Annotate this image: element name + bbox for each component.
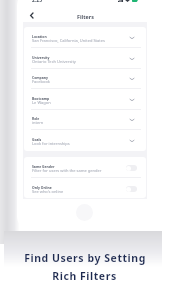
staticText: Filters — [77, 13, 94, 20]
staticText: Company — [32, 75, 48, 80]
button[interactable]: Back — [25, 9, 38, 22]
button[interactable]: University — [24, 48, 146, 69]
button[interactable]: Role — [24, 109, 146, 130]
staticText: See who's online — [32, 189, 64, 194]
staticText: Find Users by Setting — [24, 251, 146, 265]
staticText: Same Gender — [32, 164, 55, 169]
staticText: Bootcamp — [32, 96, 50, 101]
button[interactable]: Only Online — [24, 178, 146, 198]
button[interactable]: Same Gender — [24, 157, 146, 178]
staticText: 2:25 — [32, 0, 42, 4]
button[interactable]: Bootcamp — [24, 89, 146, 110]
staticText: Facebook — [32, 79, 50, 84]
staticText: Only Online — [32, 185, 52, 190]
button[interactable]: Company — [24, 68, 146, 89]
staticText: Filter for users with the same gender — [32, 168, 102, 173]
staticText: Location — [32, 34, 47, 39]
staticText: Role — [32, 116, 40, 121]
staticText: Goals — [32, 137, 42, 142]
staticText: Look for internships — [32, 141, 70, 146]
button[interactable]: Location — [24, 27, 146, 48]
button[interactable]: Goals — [24, 130, 146, 151]
staticText: Rich Filters — [52, 269, 117, 283]
staticText: Ontario Tech University — [32, 59, 76, 64]
staticText: University — [32, 55, 50, 60]
staticText: intern — [32, 120, 44, 125]
staticText: San Francisco, California, United States — [32, 38, 105, 43]
staticText: Le Wagon — [32, 100, 51, 105]
